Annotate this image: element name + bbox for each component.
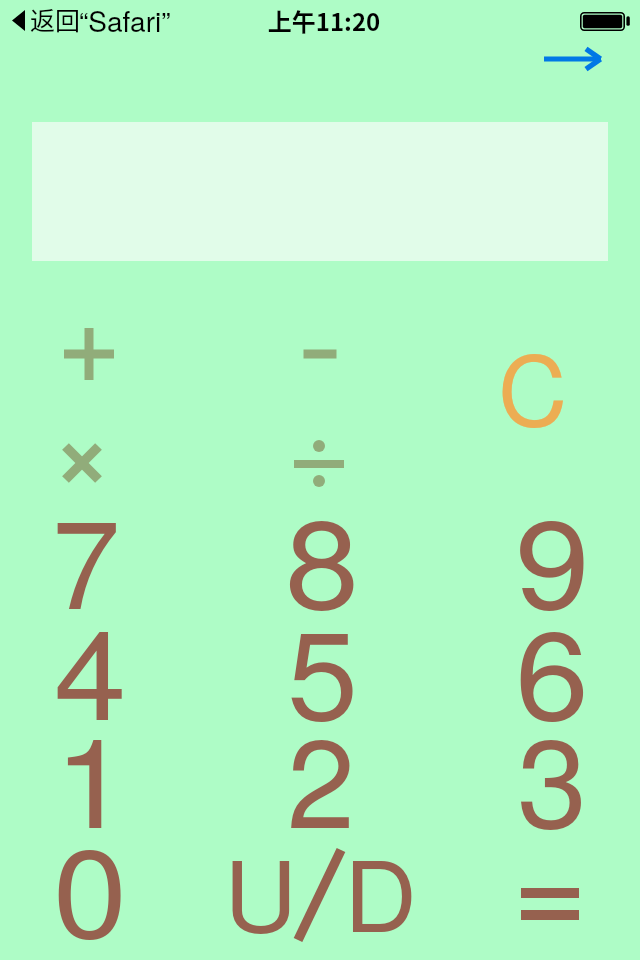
button[interactable]: Equals: [427, 796, 640, 905]
button[interactable]: C: [427, 290, 640, 399]
staticText: 返回: [30, 1, 81, 37]
staticText: D: [344, 819, 417, 959]
staticText: 5: [287, 578, 358, 756]
staticText: 6: [515, 578, 589, 756]
button[interactable]: 5: [213, 565, 427, 674]
staticText: 8: [285, 467, 359, 645]
button[interactable]: Plus: [0, 290, 213, 399]
staticText: 2: [287, 686, 355, 864]
other: Battery full: [576, 6, 636, 36]
staticText: 3: [517, 686, 587, 864]
button[interactable]: U: [213, 796, 427, 905]
staticText: C: [498, 316, 568, 453]
button[interactable]: 1: [0, 673, 213, 782]
staticText: 0: [53, 796, 127, 960]
button[interactable]: Divide: [213, 399, 427, 508]
button[interactable]: 4: [0, 565, 213, 674]
button[interactable]: 3: [427, 673, 640, 782]
staticText: 7: [52, 467, 120, 645]
button[interactable]: Multiply: [0, 399, 213, 508]
staticText: 上午11:20: [4, 3, 640, 38]
staticText: 1: [54, 686, 130, 864]
button[interactable]: 0: [0, 783, 213, 892]
button[interactable]: 9: [427, 454, 640, 563]
button[interactable]: 6: [427, 565, 640, 674]
button[interactable]: Go: [528, 34, 616, 84]
button[interactable]: 返回: [0, 0, 182, 40]
button[interactable]: Minus: [213, 290, 427, 399]
staticText: 9: [515, 467, 590, 645]
staticText: 4: [54, 578, 126, 756]
button[interactable]: 7: [0, 454, 213, 563]
button[interactable]: 2: [213, 673, 427, 782]
button[interactable]: 8: [213, 454, 427, 563]
staticText: “Safari”: [79, 0, 171, 40]
staticText: U: [224, 819, 297, 959]
